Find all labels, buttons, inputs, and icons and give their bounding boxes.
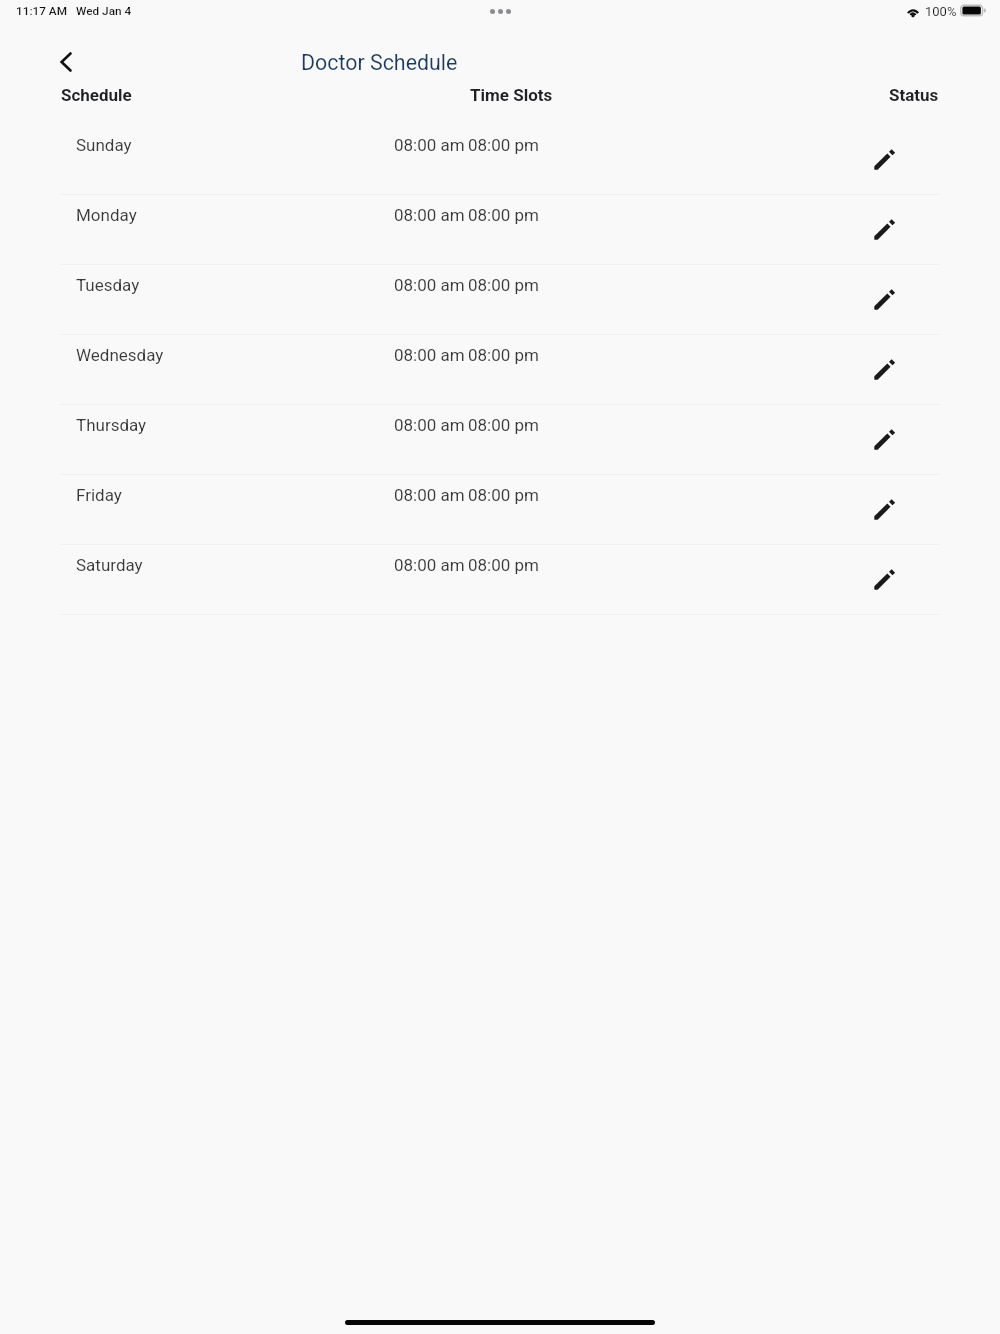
staticText: Wednesday xyxy=(76,345,164,365)
button[interactable]: Edit Saturday schedule xyxy=(869,564,900,595)
button[interactable]: Saturday xyxy=(0,545,1000,615)
button[interactable]: Edit Sunday schedule xyxy=(869,144,900,175)
staticText: Status xyxy=(889,85,939,105)
button[interactable]: Tuesday xyxy=(0,265,1000,335)
staticText: Thursday xyxy=(76,415,147,435)
staticText: 08:00 am xyxy=(394,345,465,365)
staticText: 08:00 am xyxy=(394,135,465,155)
staticText: 08:00 pm xyxy=(468,485,540,505)
staticText: 08:00 am xyxy=(394,415,465,435)
staticText: Sunday xyxy=(76,135,132,155)
button[interactable]: Back xyxy=(46,38,85,85)
staticText: 11:17 AM xyxy=(16,4,68,18)
button[interactable]: Wednesday xyxy=(0,335,1000,405)
button[interactable]: Sunday xyxy=(0,125,1000,195)
staticText: Schedule xyxy=(61,85,132,105)
staticText: 08:00 pm xyxy=(468,555,540,575)
button[interactable]: Edit Wednesday schedule xyxy=(869,354,900,385)
staticText: Wed Jan 4 xyxy=(76,4,132,18)
button[interactable]: Thursday xyxy=(0,405,1000,475)
button[interactable]: Edit Friday schedule xyxy=(869,494,900,525)
staticText: 08:00 am xyxy=(394,555,465,575)
button[interactable]: Friday xyxy=(0,475,1000,545)
staticText: Monday xyxy=(76,205,137,225)
staticText: Time Slots xyxy=(470,85,553,105)
button[interactable]: Edit Thursday schedule xyxy=(869,424,900,455)
staticText: Doctor Schedule xyxy=(301,50,458,75)
staticText: 08:00 pm xyxy=(468,415,540,435)
staticText: Saturday xyxy=(76,555,143,575)
button[interactable]: Edit Tuesday schedule xyxy=(869,284,900,315)
staticText: 08:00 am xyxy=(394,205,465,225)
staticText: 08:00 pm xyxy=(468,135,540,155)
staticText: 08:00 pm xyxy=(468,275,540,295)
staticText: 08:00 am xyxy=(394,275,465,295)
staticText: 100% xyxy=(925,4,957,19)
staticText: 08:00 am xyxy=(394,485,465,505)
staticText: Tuesday xyxy=(76,275,140,295)
staticText: Friday xyxy=(76,485,122,505)
staticText: 08:00 pm xyxy=(468,205,540,225)
button[interactable]: Edit Monday schedule xyxy=(869,214,900,245)
button[interactable]: Monday xyxy=(0,195,1000,265)
staticText: 08:00 pm xyxy=(468,345,540,365)
